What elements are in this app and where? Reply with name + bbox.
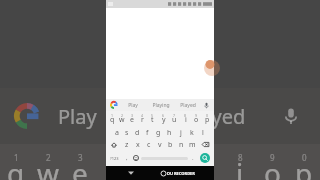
staticText: 9 — [270, 152, 275, 163]
staticText: i — [185, 115, 187, 125]
button[interactable]: 8 — [180, 112, 191, 125]
staticText: q — [110, 115, 115, 125]
staticText: h — [167, 128, 172, 138]
staticText: 9 — [195, 113, 198, 118]
staticText: Played — [180, 102, 196, 109]
button[interactable]: Playing — [147, 99, 174, 111]
button[interactable]: Google — [109, 100, 119, 110]
button[interactable]: 0 — [202, 112, 213, 125]
staticText: a — [115, 128, 119, 138]
staticText: , — [126, 154, 128, 162]
button[interactable]: 5 — [147, 112, 158, 125]
staticText: v — [158, 140, 162, 150]
staticText: 8 — [238, 152, 243, 163]
staticText: 7 — [206, 152, 211, 163]
staticText: l — [202, 128, 204, 138]
button[interactable]: k — [186, 125, 197, 138]
button[interactable]: Search — [198, 152, 212, 164]
staticText: y — [162, 115, 166, 125]
button[interactable]: Backspace — [198, 138, 213, 151]
button[interactable]: l — [197, 125, 208, 138]
button[interactable]: f — [142, 125, 153, 138]
staticText: 3 — [131, 113, 134, 118]
button[interactable]: h — [164, 125, 175, 138]
staticText: j — [236, 154, 244, 180]
button[interactable]: Space — [141, 155, 188, 161]
staticText: o — [194, 115, 199, 125]
button[interactable]: 7 — [169, 112, 180, 125]
staticText: g — [156, 128, 161, 138]
staticText: q — [7, 154, 25, 180]
button[interactable]: c — [143, 138, 154, 151]
button[interactable]: 9 — [191, 112, 202, 125]
button[interactable]: Back — [126, 168, 136, 178]
button[interactable]: a — [112, 125, 122, 138]
button[interactable]: b — [165, 138, 176, 151]
staticText: 0 — [302, 152, 307, 163]
staticText: 1 — [14, 152, 19, 163]
button[interactable]: Emoji — [131, 151, 141, 165]
staticText: w — [119, 115, 125, 125]
button[interactable]: s — [122, 125, 132, 138]
staticText: b — [168, 140, 173, 150]
staticText: w — [37, 154, 60, 180]
staticText: 4 — [141, 113, 144, 118]
staticText: d — [135, 128, 140, 138]
staticText: k — [190, 128, 194, 138]
staticText: Play — [128, 102, 138, 109]
staticText: 2 — [46, 152, 51, 163]
staticText: c — [147, 140, 151, 150]
button[interactable]: m — [187, 138, 198, 151]
staticText: 7 — [173, 113, 176, 118]
button[interactable]: j — [175, 125, 186, 138]
button[interactable]: n — [176, 138, 187, 151]
staticText: t — [151, 115, 154, 125]
staticText: Played — [183, 103, 246, 130]
button[interactable]: Play — [119, 99, 147, 111]
staticText: j — [180, 128, 182, 138]
staticText: f — [146, 128, 149, 138]
staticText: 6 — [162, 113, 165, 118]
button[interactable]: Shift — [107, 138, 121, 151]
staticText: r — [141, 115, 144, 125]
staticText: e — [130, 115, 134, 125]
staticText: Play — [58, 103, 97, 130]
staticText: 3 — [78, 152, 83, 163]
button[interactable]: 1 — [107, 112, 117, 125]
button[interactable]: Played — [174, 99, 201, 111]
staticText: s — [125, 128, 129, 138]
staticText: ?123 — [110, 156, 119, 161]
button[interactable]: 2 — [117, 112, 127, 125]
staticText: x — [136, 140, 140, 150]
button[interactable]: 3 — [127, 112, 137, 125]
staticText: 1 — [111, 113, 114, 118]
staticText: . — [192, 154, 194, 162]
staticText: u — [172, 115, 177, 125]
button[interactable]: d — [132, 125, 142, 138]
staticText: p — [295, 154, 313, 180]
staticText: n — [179, 140, 184, 150]
staticText: Playing — [152, 102, 170, 109]
staticText: e — [72, 154, 88, 180]
button[interactable]: . — [188, 151, 197, 165]
staticText: p — [205, 115, 210, 125]
button[interactable]: v — [154, 138, 165, 151]
staticText: DU RECORDER — [167, 171, 195, 176]
staticText: 8 — [184, 113, 187, 118]
staticText: 5 — [151, 113, 154, 118]
button[interactable]: , — [122, 151, 131, 165]
staticText: o — [264, 154, 281, 180]
button[interactable]: Voice input — [201, 100, 211, 110]
button[interactable]: 6 — [158, 112, 169, 125]
staticText: 0 — [206, 113, 209, 118]
staticText: 2 — [121, 113, 124, 118]
staticText: m — [189, 140, 196, 150]
button[interactable]: x — [132, 138, 143, 151]
button[interactable]: 4 — [137, 112, 147, 125]
button[interactable]: g — [153, 125, 164, 138]
staticText: z — [125, 140, 129, 150]
button[interactable]: z — [121, 138, 132, 151]
button[interactable]: ?123 — [107, 151, 122, 165]
